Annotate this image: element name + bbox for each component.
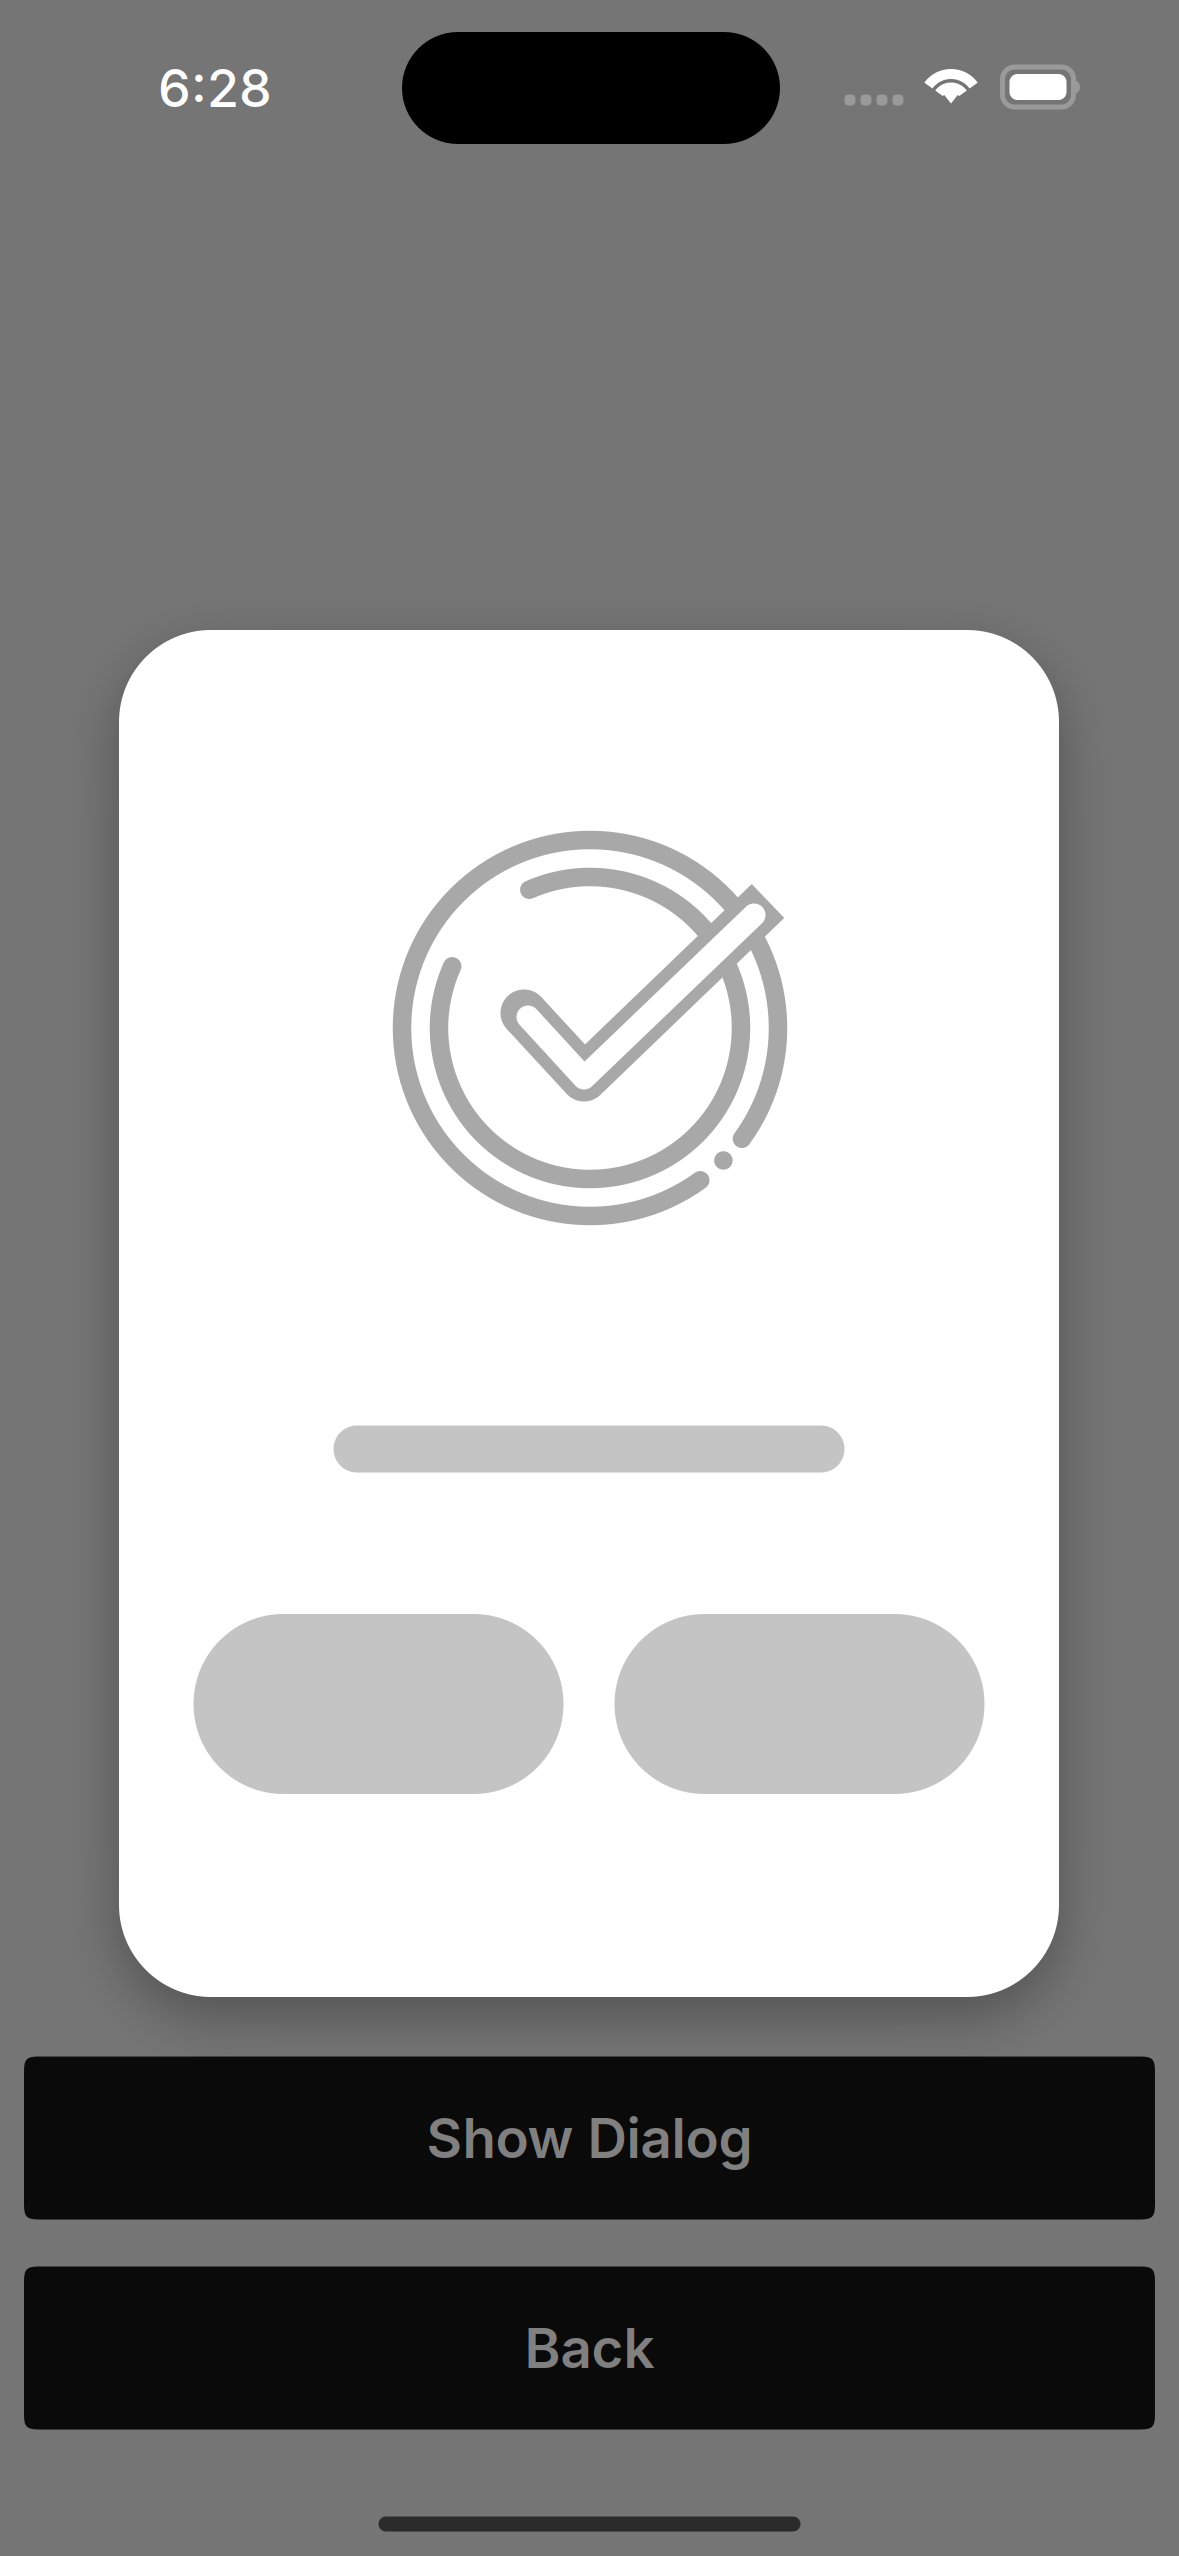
button[interactable]: Back	[24, 2266, 1155, 2429]
staticText: 6:28	[158, 56, 272, 119]
button[interactable]: Cancel	[193, 1614, 563, 1794]
button[interactable]: Confirm	[614, 1614, 984, 1794]
staticText: Show Dialog	[426, 2105, 752, 2171]
staticText: Back	[524, 2315, 654, 2381]
button[interactable]: Show Dialog	[24, 2056, 1155, 2219]
